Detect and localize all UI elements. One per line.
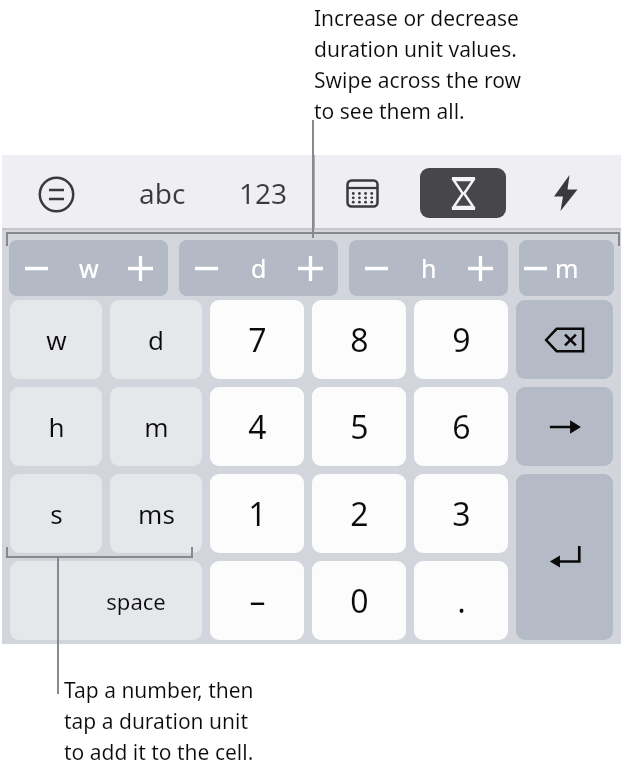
button[interactable]: Decrease w (9, 240, 168, 296)
button[interactable]: w (10, 300, 102, 379)
staticText: Increase or decrease duration unit value… (314, 4, 521, 125)
staticText: h (421, 251, 437, 285)
staticText: . (457, 579, 466, 623)
button[interactable]: Next (516, 387, 613, 466)
staticText: 1 (248, 492, 267, 536)
button[interactable]: 8 (312, 300, 406, 379)
staticText: 9 (452, 318, 471, 362)
staticText: m (144, 409, 169, 444)
button[interactable]: Increase m (581, 240, 614, 296)
staticText: space (106, 586, 166, 616)
staticText: 6 (452, 405, 471, 449)
button[interactable]: Delete (516, 300, 613, 379)
staticText: 123 (239, 174, 288, 212)
staticText: ms (138, 496, 175, 531)
button[interactable]: . (414, 561, 508, 640)
button[interactable]: Increase w (113, 240, 168, 296)
staticText: w (46, 322, 67, 357)
staticText: – (249, 579, 266, 623)
button[interactable]: Decrease m (519, 240, 552, 296)
button[interactable]: m (110, 387, 202, 466)
button[interactable]: 9 (414, 300, 508, 379)
button[interactable]: s (10, 474, 102, 553)
staticText: 0 (350, 579, 369, 623)
staticText: d (148, 322, 164, 357)
staticText: 3 (452, 492, 471, 536)
button[interactable]: Return (516, 474, 613, 640)
staticText: 7 (248, 318, 267, 362)
button[interactable]: Decrease m (519, 240, 614, 296)
staticText: 4 (248, 405, 267, 449)
button[interactable]: 4 (210, 387, 304, 466)
button[interactable]: Actions (536, 169, 594, 217)
button[interactable]: 6 (414, 387, 508, 466)
button[interactable]: 3 (414, 474, 508, 553)
button[interactable]: 1 (210, 474, 304, 553)
staticText: 5 (350, 405, 369, 449)
button[interactable]: ms (110, 474, 202, 553)
button[interactable]: Increase d (283, 240, 338, 296)
button[interactable]: Formula (34, 172, 78, 216)
button[interactable]: 0 (312, 561, 406, 640)
button[interactable]: 5 (312, 387, 406, 466)
button[interactable]: Date keyboard (336, 171, 388, 215)
button[interactable]: 2 (312, 474, 406, 553)
staticText: s (50, 496, 63, 531)
button[interactable]: Decrease w (9, 240, 64, 296)
staticText: abc (139, 174, 186, 212)
button[interactable]: h (10, 387, 102, 466)
button[interactable]: Decrease d (179, 240, 338, 296)
button[interactable]: 123 (220, 171, 306, 215)
button[interactable]: Decrease h (349, 240, 508, 296)
button[interactable]: Increase h (453, 240, 508, 296)
button[interactable]: space (10, 561, 202, 640)
staticText: m (555, 251, 579, 285)
staticText: w (79, 251, 99, 285)
button[interactable]: abc (120, 171, 204, 215)
staticText: 2 (350, 492, 369, 536)
staticText: 8 (350, 318, 369, 362)
button[interactable]: 7 (210, 300, 304, 379)
button[interactable]: Decrease h (349, 240, 404, 296)
button[interactable]: – (210, 561, 304, 640)
staticText: d (251, 251, 267, 285)
button[interactable]: Decrease d (179, 240, 234, 296)
button[interactable]: d (110, 300, 202, 379)
staticText: Tap a number, then tap a duration unit t… (64, 676, 254, 766)
staticText: h (48, 409, 65, 444)
button[interactable]: Duration keyboard (420, 168, 506, 218)
